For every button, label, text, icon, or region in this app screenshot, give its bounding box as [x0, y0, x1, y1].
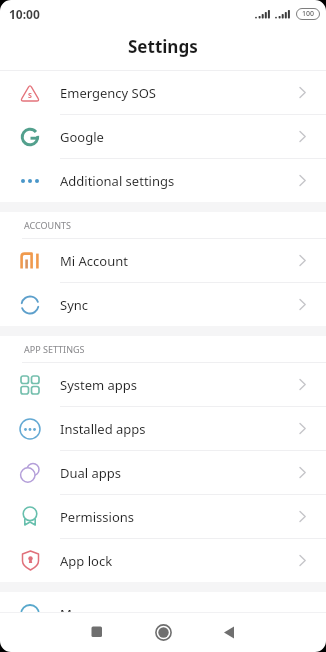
staticText: Emergency SOS [60, 84, 156, 102]
button[interactable]: S [0, 71, 326, 114]
staticText: App lock [60, 552, 113, 570]
button[interactable]: Permissions [0, 495, 326, 538]
button[interactable]: Google [0, 115, 326, 158]
staticText: Installed apps [60, 420, 146, 438]
button[interactable]: Dual apps [0, 451, 326, 494]
button[interactable] [77, 612, 117, 652]
staticText: 100 [302, 9, 315, 19]
button[interactable]: System apps [0, 363, 326, 406]
staticText: S [28, 91, 32, 101]
button[interactable]: App lock [0, 539, 326, 582]
staticText: System apps [60, 376, 138, 394]
button[interactable]: Sync [0, 283, 326, 326]
button[interactable] [143, 612, 183, 652]
staticText: Additional settings [60, 172, 175, 190]
staticText: APP SETTINGS [24, 343, 85, 355]
staticText: Dual apps [60, 464, 122, 482]
button[interactable] [209, 612, 249, 652]
staticText: Permissions [60, 508, 135, 526]
staticText: 10:00 [9, 6, 40, 22]
staticText: Mi Account [60, 252, 128, 270]
staticText: ACCOUNTS [24, 219, 71, 231]
staticText: Settings [128, 35, 198, 58]
button[interactable]: Installed apps [0, 407, 326, 450]
button[interactable]: Manage apps [0, 592, 326, 635]
staticText: Manage apps [60, 605, 143, 623]
staticText: Google [60, 128, 104, 146]
button[interactable]: Additional settings [0, 159, 326, 202]
staticText: Sync [60, 296, 89, 314]
button[interactable]: Mi Account [0, 239, 326, 282]
